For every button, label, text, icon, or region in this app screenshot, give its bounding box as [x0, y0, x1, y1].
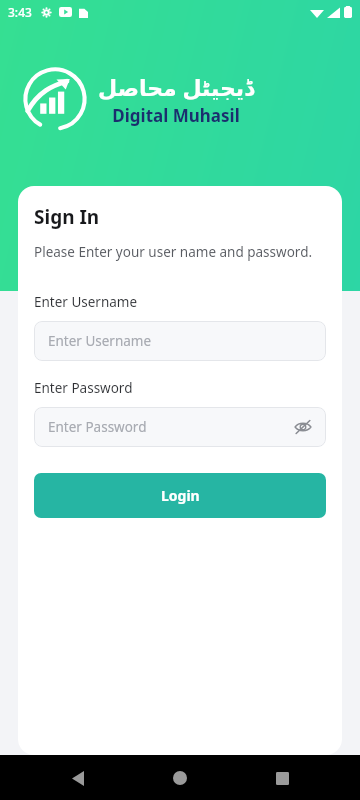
staticText: Enter Password — [34, 379, 133, 397]
button[interactable]: Show password — [290, 414, 316, 440]
staticText: Digital Muhasil — [112, 104, 240, 127]
staticText: Please Enter your user name and password… — [34, 243, 313, 261]
button[interactable]: Login — [34, 473, 326, 518]
staticText: Enter Username — [34, 293, 138, 311]
button[interactable]: Home — [165, 763, 195, 793]
staticText: Enter Password — [48, 418, 147, 436]
button[interactable]: Enter Password — [34, 407, 326, 447]
staticText: Sign In — [34, 204, 100, 230]
button[interactable]: Recent apps — [267, 763, 297, 793]
button[interactable]: Back — [63, 763, 93, 793]
button[interactable]: Enter Username — [34, 321, 326, 361]
staticText: 3:43 — [8, 4, 32, 20]
staticText: Enter Username — [48, 332, 152, 350]
staticText: Login — [161, 486, 200, 505]
staticText: ڈیجیٹل محاصل — [98, 72, 254, 102]
